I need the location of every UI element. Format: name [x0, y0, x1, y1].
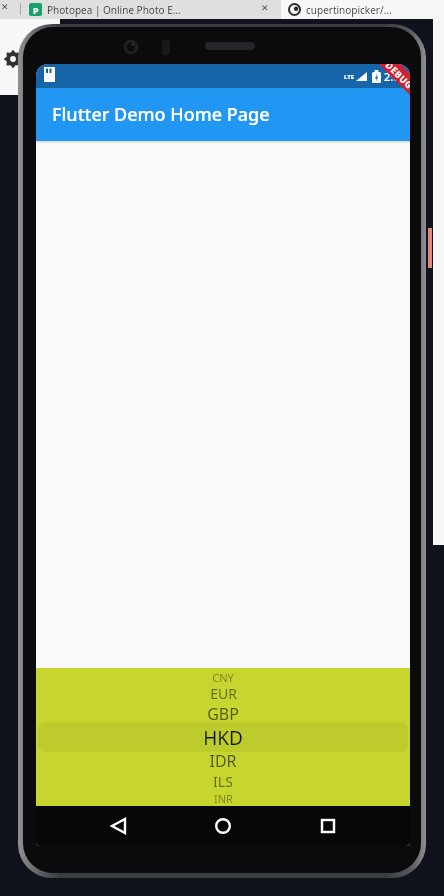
button[interactable]: IDR [36, 750, 410, 772]
staticText: 2:01 [384, 69, 406, 84]
staticText: Flutter Demo Home Page [52, 102, 270, 127]
staticText: EUR [210, 684, 237, 703]
staticText: HKD [203, 725, 243, 750]
button[interactable]: EUR [36, 684, 410, 703]
button[interactable]: ILS [36, 772, 410, 791]
staticText: ILS [213, 772, 233, 791]
staticText: GBP [207, 703, 239, 725]
button[interactable]: INR [36, 791, 410, 805]
button[interactable]: HKD [36, 725, 410, 750]
staticText: LTE [344, 73, 355, 81]
staticText: Photopea | Online Photo E… [47, 3, 181, 17]
staticText: CNY [212, 670, 234, 684]
staticText: DEBUG [383, 64, 410, 91]
staticText: ✕ [261, 3, 269, 13]
staticText: ✕ [1, 2, 9, 12]
button[interactable]: CNY [36, 670, 410, 684]
button[interactable]: GBP [36, 703, 410, 725]
staticText: cupertinopicker/… [306, 3, 392, 17]
staticText: P [33, 4, 39, 16]
button[interactable]: Home [201, 806, 245, 846]
button[interactable]: Recents [306, 806, 350, 846]
staticText: INR [214, 791, 233, 805]
button[interactable]: Back [97, 806, 141, 846]
staticText: IDR [209, 750, 237, 772]
